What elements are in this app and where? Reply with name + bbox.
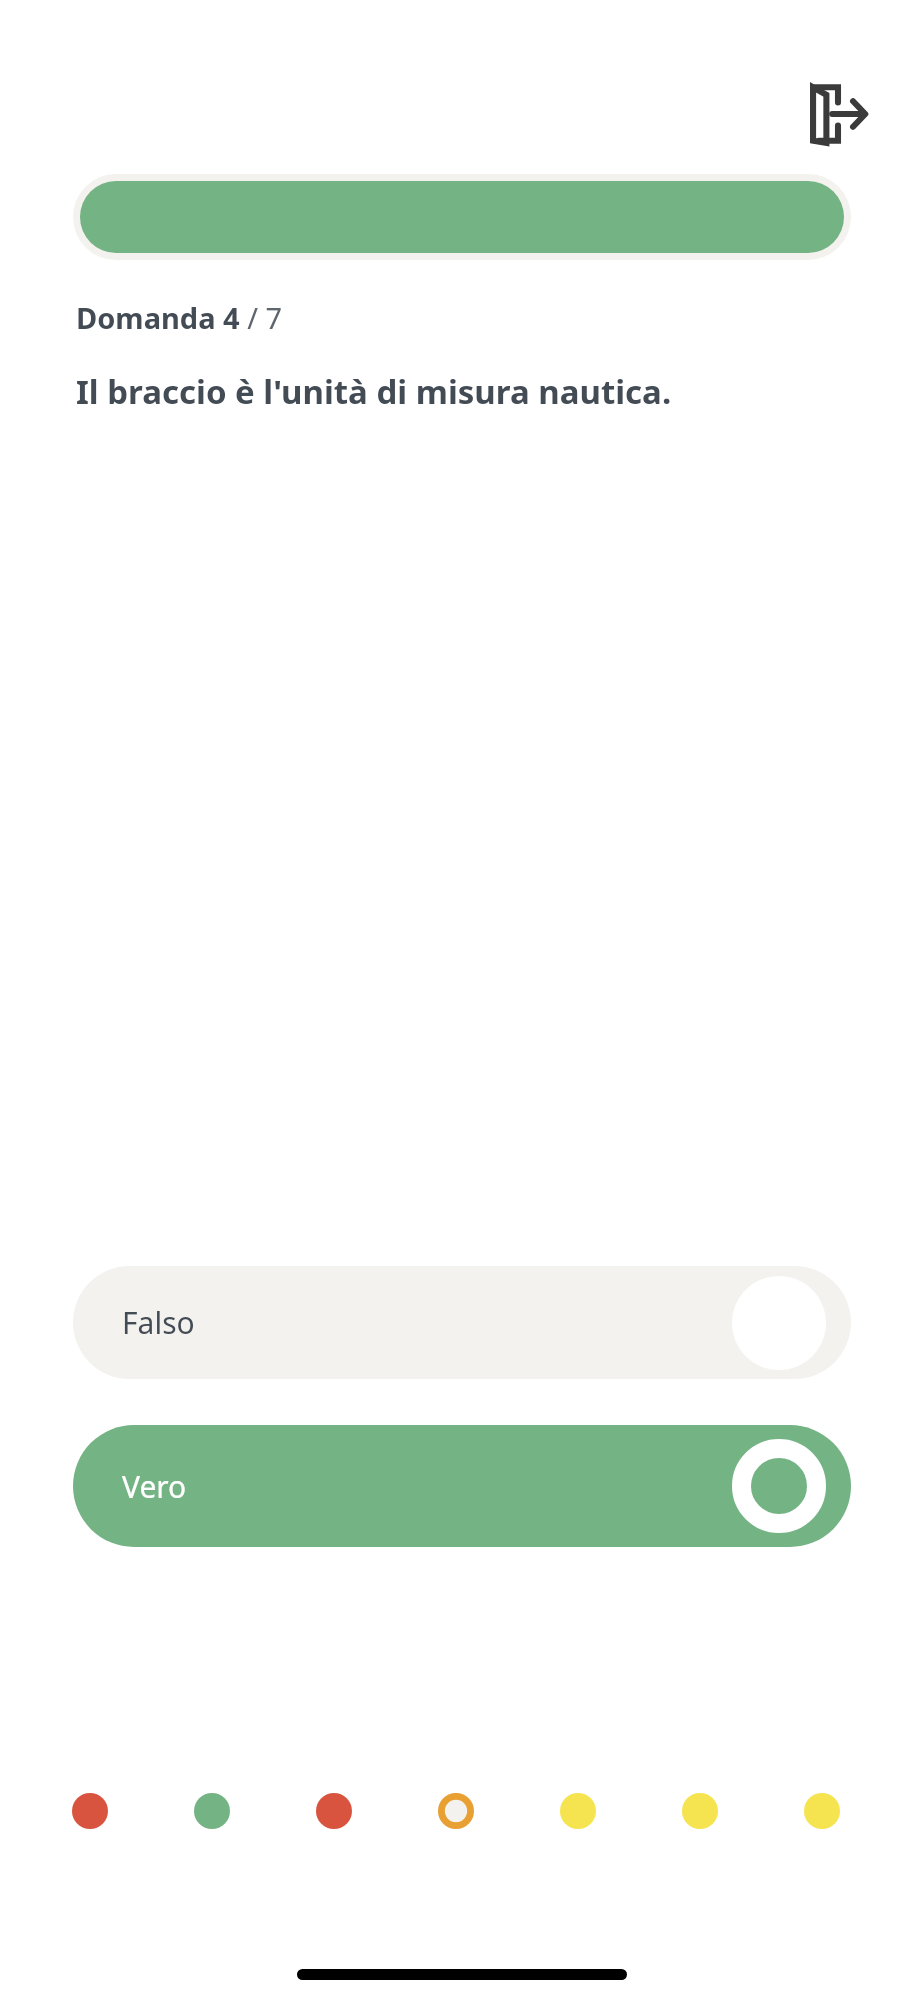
staticText: Il braccio è l'unità di misura nautica.: [76, 369, 672, 414]
staticText: Vero: [122, 1466, 187, 1507]
staticText: Falso: [122, 1302, 195, 1343]
button[interactable]: Vero: [73, 1425, 851, 1547]
staticText: Domanda 4 / 7: [76, 298, 283, 337]
button[interactable]: Esci dal quiz: [800, 76, 876, 152]
button[interactable]: Falso: [73, 1266, 851, 1379]
